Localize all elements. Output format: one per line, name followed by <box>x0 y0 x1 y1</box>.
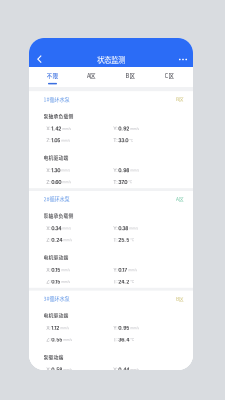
staticText: 1#循环水泵 <box>43 95 69 103</box>
staticText: Z: <box>46 337 50 343</box>
staticText: 0.44 <box>117 367 129 373</box>
staticText: X: <box>46 367 50 373</box>
staticText: 25.5 <box>117 237 129 243</box>
button[interactable]: 不限 <box>33 67 72 87</box>
staticText: Y: <box>113 367 117 373</box>
staticText: 36.4 <box>117 337 129 343</box>
staticText: T: <box>113 137 117 143</box>
staticText: 0.92 <box>117 126 129 132</box>
button[interactable]: B区 <box>111 67 150 87</box>
staticText: mm/s <box>59 326 69 330</box>
staticText: A区 <box>176 195 184 202</box>
staticText: 电机驱动端 <box>43 154 68 161</box>
staticText: T: <box>113 179 117 185</box>
staticText: 1.30 <box>50 167 60 173</box>
staticText: 1.05 <box>50 137 60 143</box>
staticText: mm/s <box>62 238 72 242</box>
button[interactable]: Back <box>33 52 47 67</box>
staticText: ℃ <box>129 280 134 284</box>
button[interactable]: 2#循环水泵 <box>29 191 193 288</box>
button[interactable]: C区 <box>150 67 189 87</box>
staticText: A区 <box>87 72 96 80</box>
staticText: X: <box>46 225 50 231</box>
staticText: Y: <box>113 126 117 132</box>
staticText: T: <box>113 337 117 343</box>
staticText: 泵驱动端 <box>43 353 63 360</box>
staticText: mm/s <box>60 268 70 272</box>
staticText: X: <box>46 126 50 132</box>
staticText: 0.58 <box>50 367 62 373</box>
staticText: B区 <box>176 96 184 103</box>
button[interactable]: 1#循环水泵 <box>29 91 193 188</box>
staticText: ℃ <box>128 138 133 142</box>
staticText: 0.95 <box>117 325 129 331</box>
staticText: 0.34 <box>50 225 61 231</box>
staticText: 0.24 <box>50 237 62 243</box>
staticText: Z: <box>46 237 50 243</box>
staticText: 电机驱动端 <box>43 254 68 261</box>
staticText: ℃ <box>129 338 134 342</box>
staticText: 2#循环水泵 <box>43 195 69 203</box>
button[interactable]: More options <box>174 52 189 67</box>
staticText: 1.12 <box>50 325 59 331</box>
staticText: T: <box>113 279 117 285</box>
staticText: 0.15 <box>50 279 60 285</box>
staticText: Z: <box>46 179 50 185</box>
staticText: 24.2 <box>117 279 129 285</box>
staticText: 37.0 <box>117 179 127 185</box>
staticText: 0.55 <box>50 337 62 343</box>
staticText: mm/s <box>62 338 72 342</box>
staticText: mm/s <box>129 168 139 172</box>
staticText: mm/s <box>61 226 71 230</box>
button[interactable]: 3#循环水泵 <box>29 291 193 387</box>
staticText: mm/s <box>129 126 139 131</box>
staticText: mm/s <box>60 280 70 284</box>
staticText: mm/s <box>61 126 71 131</box>
staticText: ℃ <box>127 180 132 184</box>
staticText: Y: <box>113 325 117 331</box>
staticText: B区 <box>125 72 135 80</box>
staticText: mm/s <box>129 326 139 330</box>
staticText: C区 <box>164 72 174 80</box>
staticText: 0.98 <box>117 167 129 173</box>
staticText: 3#循环水泵 <box>43 295 69 302</box>
staticText: 0.60 <box>50 179 61 185</box>
staticText: 1.42 <box>50 126 61 132</box>
staticText: ℃ <box>129 238 134 242</box>
staticText: mm/s <box>128 226 138 230</box>
staticText: 状态监测 <box>97 54 125 65</box>
staticText: Z: <box>46 279 50 285</box>
staticText: 0.17 <box>117 267 127 273</box>
staticText: Y: <box>113 167 117 173</box>
staticText: T: <box>113 237 117 243</box>
staticText: 泵轴承负载侧 <box>43 212 73 219</box>
staticText: mm/s <box>61 180 71 184</box>
staticText: mm/s <box>62 368 72 372</box>
staticText: mm/s <box>60 138 70 142</box>
button[interactable]: A区 <box>72 67 111 87</box>
staticText: X: <box>46 267 50 273</box>
staticText: 33.0 <box>117 137 128 143</box>
staticText: Z: <box>46 137 50 143</box>
staticText: Y: <box>113 267 117 273</box>
staticText: 0.15 <box>50 267 60 273</box>
staticText: X: <box>46 167 50 173</box>
staticText: 电机驱动端 <box>43 312 68 319</box>
staticText: 不限 <box>46 72 58 80</box>
staticText: 泵轴承负载侧 <box>43 112 73 119</box>
staticText: X: <box>46 325 50 331</box>
staticText: mm/s <box>127 268 137 272</box>
staticText: mm/s <box>60 168 70 172</box>
staticText: mm/s <box>129 368 139 372</box>
staticText: B区 <box>176 295 184 302</box>
staticText: Y: <box>113 225 117 231</box>
staticText: 0.38 <box>117 225 128 231</box>
